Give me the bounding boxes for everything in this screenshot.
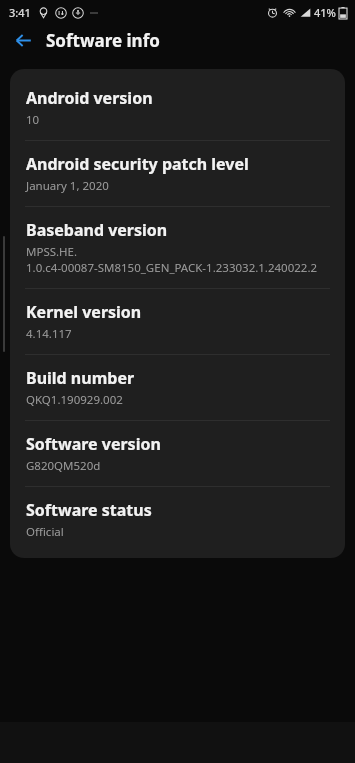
button[interactable]: Build number bbox=[10, 355, 345, 420]
staticText: Official bbox=[26, 524, 64, 540]
staticText: January 1, 2020 bbox=[26, 178, 109, 194]
button[interactable]: Android security patch level bbox=[10, 141, 345, 206]
staticText: 41% bbox=[314, 5, 336, 20]
staticText: 4.14.117 bbox=[26, 326, 72, 342]
staticText: Build number bbox=[26, 367, 135, 389]
staticText: Baseband version bbox=[26, 219, 168, 241]
staticText: Android version bbox=[26, 87, 153, 109]
staticText: MPSS.HE. bbox=[26, 244, 78, 260]
staticText: Software info bbox=[46, 29, 160, 52]
staticText: Software version bbox=[26, 433, 161, 455]
button[interactable]: Baseband version bbox=[10, 207, 345, 288]
staticText: G820QM520d bbox=[26, 458, 101, 474]
button[interactable]: Software status bbox=[10, 487, 345, 552]
staticText: Kernel version bbox=[26, 301, 142, 323]
button[interactable]: Android version bbox=[10, 75, 345, 140]
button[interactable]: Kernel version bbox=[10, 289, 345, 354]
staticText: 3:41 bbox=[9, 5, 31, 20]
staticText: 1.0.c4-00087-SM8150_GEN_PACK-1.233032.1.… bbox=[26, 260, 318, 276]
button[interactable]: Software version bbox=[10, 421, 345, 486]
staticText: Android security patch level bbox=[26, 153, 249, 175]
staticText: Software status bbox=[26, 499, 152, 521]
staticText: 10 bbox=[26, 112, 40, 128]
button[interactable]: Back bbox=[6, 24, 40, 57]
staticText: QKQ1.190929.002 bbox=[26, 392, 123, 408]
